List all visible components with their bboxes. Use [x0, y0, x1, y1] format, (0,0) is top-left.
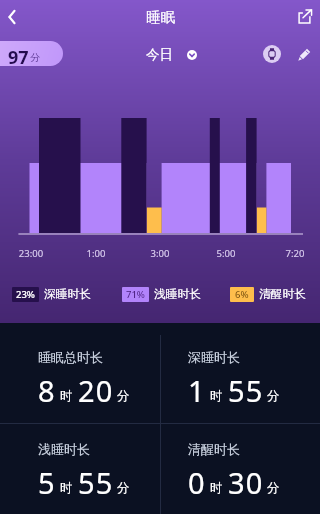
staticText: 8: [38, 371, 56, 410]
staticText: 分: [117, 388, 130, 404]
staticText: 6%: [235, 288, 249, 301]
staticText: 时: [210, 388, 223, 404]
button[interactable]: Share: [289, 1, 320, 32]
staticText: 23%: [16, 288, 35, 301]
staticText: 今日: [146, 46, 173, 63]
staticText: 时: [60, 388, 73, 404]
button[interactable]: Back: [0, 1, 27, 32]
button[interactable]: 71%: [122, 287, 201, 302]
staticText: 55: [78, 463, 114, 502]
staticText: 7:20: [279, 247, 311, 260]
staticText: 3:00: [144, 247, 176, 260]
staticText: 分: [30, 51, 40, 64]
staticText: 5:00: [210, 247, 242, 260]
staticText: 浅睡时长: [38, 441, 90, 457]
staticText: 55: [228, 371, 264, 410]
staticText: 1: [188, 371, 206, 410]
staticText: 20: [78, 371, 114, 410]
staticText: 深睡时长: [44, 287, 91, 302]
staticText: 30: [228, 463, 264, 502]
staticText: 0: [188, 463, 206, 502]
staticText: 清醒时长: [259, 287, 306, 302]
button[interactable]: 浅睡时长: [38, 441, 130, 502]
staticText: 分: [267, 388, 280, 404]
staticText: 深睡时长: [188, 349, 240, 365]
staticText: 时: [60, 480, 73, 496]
button[interactable]: 睡眠总时长: [38, 349, 130, 410]
staticText: 97: [8, 45, 29, 66]
button[interactable]: 今日: [146, 46, 197, 63]
button[interactable]: Device: [258, 41, 285, 66]
staticText: 5: [38, 463, 56, 502]
staticText: 1:00: [80, 247, 112, 260]
button[interactable]: 清醒时长: [188, 441, 280, 502]
staticText: 分: [267, 480, 280, 496]
button[interactable]: 6%: [230, 287, 306, 302]
staticText: 浅睡时长: [154, 287, 201, 302]
staticText: 23:00: [15, 247, 47, 260]
staticText: 时: [210, 480, 223, 496]
staticText: 71%: [126, 288, 145, 301]
staticText: 分: [117, 480, 130, 496]
staticText: 清醒时长: [188, 441, 240, 457]
staticText: 睡眠总时长: [38, 349, 103, 365]
button[interactable]: 97: [0, 41, 63, 66]
button[interactable]: Edit: [292, 41, 318, 66]
button[interactable]: 深睡时长: [188, 349, 280, 410]
staticText: 睡眠: [146, 8, 175, 26]
button[interactable]: 23%: [12, 287, 91, 302]
